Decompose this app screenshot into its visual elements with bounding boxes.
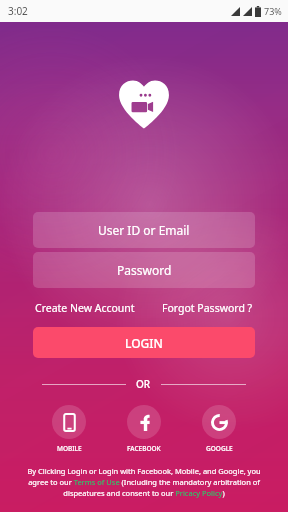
- button[interactable]: By Clicking Login or Login with Facebook…: [22, 466, 266, 498]
- staticText: 73%: [264, 5, 282, 17]
- button[interactable]: Create New Account: [33, 299, 137, 317]
- staticText: Password: [117, 262, 172, 278]
- staticText: GOOGLE: [206, 444, 233, 453]
- staticText: FACEBOOK: [127, 444, 161, 453]
- staticText: MOBILE: [57, 444, 82, 453]
- staticText: Forgot Password ?: [162, 301, 253, 315]
- button[interactable]: Forgot Password ?: [160, 299, 255, 317]
- staticText: Create New Account: [35, 301, 135, 315]
- button[interactable]: Password: [33, 252, 255, 288]
- button[interactable]: Sign in with GOOGLE: [202, 405, 236, 439]
- staticText: LOGIN: [125, 335, 163, 351]
- button[interactable]: LOGIN: [33, 327, 255, 358]
- button[interactable]: User ID or Email: [33, 212, 255, 248]
- staticText: 3:02: [8, 4, 28, 18]
- staticText: OR: [136, 377, 151, 391]
- staticText: User ID or Email: [98, 222, 190, 238]
- button[interactable]: Sign in with FACEBOOK: [127, 405, 161, 439]
- button[interactable]: Sign in with MOBILE: [52, 405, 86, 439]
